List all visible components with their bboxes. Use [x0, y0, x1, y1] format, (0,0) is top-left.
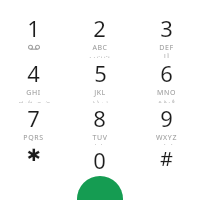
staticText: 8 [93, 103, 106, 133]
button[interactable]: star [0, 145, 66, 179]
staticText: WXYZ [156, 133, 177, 143]
button[interactable]: 6 MNO [133, 58, 200, 103]
staticText: ﺯ ﺭ ﺫ ﺩ [92, 98, 108, 103]
staticText: ﺽ ﺹ ﺵ ﺱ [16, 98, 50, 103]
staticText: ﺙ ﺕ ﺏ [89, 53, 110, 58]
staticText: ﻡ ﻝ ﻙ [91, 143, 108, 145]
staticText: 0 [93, 145, 106, 175]
staticText: GHI [26, 88, 41, 98]
button[interactable]: Call [77, 176, 123, 200]
staticText: 2 [93, 13, 106, 43]
staticText: 7 [27, 103, 40, 133]
staticText: 4 [27, 58, 40, 88]
button[interactable]: 3 DEF [133, 13, 200, 58]
button[interactable]: 9 WXYZ [133, 103, 200, 145]
staticText: + [97, 175, 103, 179]
staticText: 3 [160, 13, 173, 43]
button[interactable]: 8 TUV [66, 103, 133, 145]
staticText: # [160, 145, 173, 172]
staticText: ﺃ ﺍ [164, 53, 169, 58]
staticText: 9 [160, 103, 173, 133]
staticText: 1 [27, 13, 40, 43]
button[interactable]: 1 voicemail [0, 13, 66, 58]
staticText: ✱ [26, 145, 41, 165]
staticText: PQRS [23, 133, 44, 143]
staticText: JKL [94, 88, 106, 98]
button[interactable]: 7 PQRS [0, 103, 66, 145]
staticText: 6 [160, 58, 173, 88]
staticText: ﻑ ﻍ ﻉ [158, 98, 175, 103]
button[interactable]: 0 plus [66, 145, 133, 179]
button[interactable]: 4 GHI [0, 58, 66, 103]
staticText: 5 [94, 58, 107, 88]
staticText: DEF [159, 43, 174, 53]
staticText: ABC [92, 43, 108, 53]
staticText: ﻅ ﻁ ﺥ [157, 143, 176, 145]
button[interactable]: 2 ABC [66, 13, 133, 58]
staticText: TUV [92, 133, 108, 143]
button[interactable]: 5 JKL [66, 58, 133, 103]
button[interactable]: pound [133, 145, 200, 179]
staticText: MNO [157, 88, 176, 98]
